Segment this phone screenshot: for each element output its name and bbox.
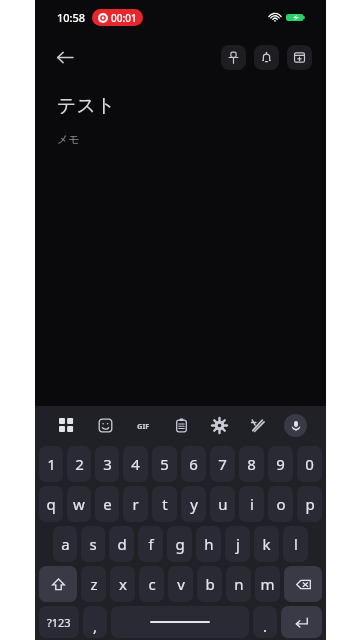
- button[interactable]: 5: [152, 446, 177, 482]
- button[interactable]: 9: [268, 446, 293, 482]
- staticText: v: [177, 574, 185, 594]
- button[interactable]: Archive: [287, 45, 312, 70]
- button[interactable]: ,: [83, 606, 107, 638]
- button[interactable]: p: [297, 486, 322, 522]
- button[interactable]: 8: [239, 446, 264, 482]
- staticText: b: [205, 574, 215, 594]
- button[interactable]: e: [95, 486, 119, 522]
- button[interactable]: i: [239, 486, 264, 522]
- button[interactable]: a: [53, 526, 77, 562]
- button[interactable]: g: [167, 526, 192, 562]
- button[interactable]: m: [255, 566, 280, 602]
- staticText: y: [190, 494, 198, 514]
- button[interactable]: Back: [47, 40, 81, 74]
- staticText: l: [294, 534, 298, 554]
- staticText: i: [250, 494, 254, 514]
- button[interactable]: Clipboard: [162, 406, 200, 444]
- staticText: k: [262, 534, 271, 554]
- button[interactable]: Apps: [47, 406, 86, 444]
- staticText: 1: [47, 454, 56, 474]
- button[interactable]: GIF: [124, 406, 162, 444]
- button[interactable]: Enter: [281, 606, 322, 638]
- button[interactable]: x: [110, 566, 135, 602]
- button[interactable]: c: [139, 566, 164, 602]
- staticText: p: [305, 494, 315, 514]
- staticText: j: [236, 534, 240, 554]
- button[interactable]: u: [210, 486, 235, 522]
- staticText: z: [90, 574, 98, 594]
- button[interactable]: h: [196, 526, 221, 562]
- staticText: 2: [75, 454, 84, 474]
- button[interactable]: Shift: [39, 566, 77, 602]
- button[interactable]: l: [283, 526, 308, 562]
- staticText: e: [103, 494, 112, 514]
- button[interactable]: z: [81, 566, 106, 602]
- button[interactable]: Voice input: [284, 414, 307, 437]
- staticText: 7: [218, 454, 227, 474]
- button[interactable]: Stickers: [86, 406, 124, 444]
- button[interactable]: 2: [67, 446, 91, 482]
- button[interactable]: 3: [95, 446, 119, 482]
- staticText: x: [119, 574, 127, 594]
- staticText: 3: [103, 454, 112, 474]
- button[interactable]: Backspace: [284, 566, 322, 602]
- staticText: c: [148, 574, 156, 594]
- button[interactable]: Pin: [221, 45, 246, 70]
- staticText: 4: [131, 454, 140, 474]
- staticText: q: [46, 494, 56, 514]
- staticText: u: [218, 494, 228, 514]
- button[interactable]: d: [109, 526, 134, 562]
- staticText: s: [89, 534, 97, 554]
- staticText: .: [263, 616, 268, 636]
- button[interactable]: b: [197, 566, 222, 602]
- staticText: 8: [247, 454, 256, 474]
- staticText: n: [234, 574, 244, 594]
- staticText: m: [260, 574, 275, 594]
- button[interactable]: 4: [123, 446, 148, 482]
- button[interactable]: f: [138, 526, 163, 562]
- button[interactable]: q: [39, 486, 63, 522]
- button[interactable]: 7: [210, 446, 235, 482]
- staticText: g: [175, 534, 185, 554]
- staticText: 9: [276, 454, 285, 474]
- staticText: 5: [160, 454, 169, 474]
- staticText: ?123: [47, 615, 71, 630]
- staticText: f: [148, 534, 154, 554]
- button[interactable]: Reminder: [254, 45, 279, 70]
- staticText: o: [276, 494, 286, 514]
- button[interactable]: 6: [181, 446, 206, 482]
- button[interactable]: v: [168, 566, 193, 602]
- button[interactable]: n: [226, 566, 251, 602]
- button[interactable]: r: [123, 486, 148, 522]
- button[interactable]: 0: [297, 446, 322, 482]
- staticText: 0: [305, 454, 314, 474]
- staticText: ,: [93, 616, 98, 636]
- button[interactable]: 1: [39, 446, 63, 482]
- staticText: GIF: [137, 421, 150, 431]
- staticText: 00:01: [111, 11, 137, 25]
- button[interactable]: Space: [111, 606, 249, 638]
- button[interactable]: w: [67, 486, 91, 522]
- staticText: r: [132, 494, 139, 514]
- staticText: a: [61, 534, 70, 554]
- button[interactable]: y: [181, 486, 206, 522]
- staticText: w: [73, 494, 85, 514]
- button[interactable]: o: [268, 486, 293, 522]
- button[interactable]: k: [254, 526, 279, 562]
- button[interactable]: Handwriting: [238, 406, 276, 444]
- button[interactable]: s: [81, 526, 105, 562]
- staticText: 6: [189, 454, 198, 474]
- button[interactable]: .: [253, 606, 277, 638]
- button[interactable]: Settings: [200, 406, 238, 444]
- staticText: テスト: [57, 94, 116, 118]
- staticText: h: [204, 534, 214, 554]
- button[interactable]: ?123: [39, 606, 79, 638]
- staticText: t: [162, 494, 168, 514]
- staticText: 10:58: [57, 10, 86, 25]
- staticText: d: [117, 534, 127, 554]
- button[interactable]: j: [225, 526, 250, 562]
- button[interactable]: t: [152, 486, 177, 522]
- staticText: メモ: [57, 132, 80, 146]
